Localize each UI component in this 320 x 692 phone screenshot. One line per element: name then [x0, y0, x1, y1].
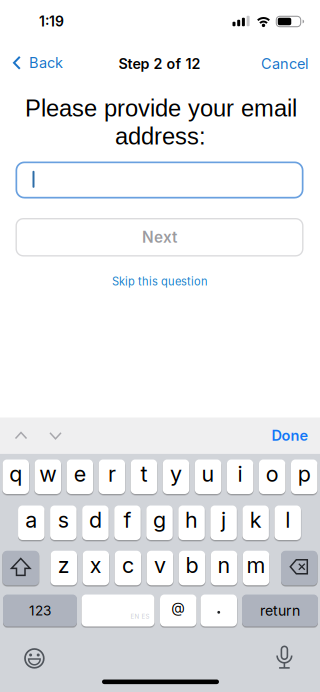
button[interactable]: y — [163, 459, 189, 494]
staticText: return — [260, 602, 300, 619]
button[interactable]: m — [243, 551, 269, 585]
staticText: l — [285, 507, 290, 533]
staticText: j — [221, 507, 226, 533]
staticText: EN ES — [130, 613, 149, 620]
button[interactable]: Cancel — [249, 44, 320, 84]
staticText: v — [154, 552, 166, 578]
staticText: z — [58, 552, 70, 578]
button[interactable]: s — [50, 505, 77, 540]
button[interactable]: @ — [160, 594, 196, 626]
button[interactable]: g — [146, 505, 173, 540]
staticText: 123 — [29, 602, 51, 619]
staticText: q — [9, 461, 22, 487]
staticText: b — [185, 552, 198, 578]
button[interactable]: z — [50, 551, 77, 585]
staticText: x — [90, 552, 102, 578]
button[interactable]: return — [242, 594, 318, 626]
button[interactable]: Back — [7, 48, 71, 78]
staticText: Step 2 of 12 — [118, 55, 200, 72]
button[interactable]: Dictate — [262, 636, 306, 680]
staticText: u — [201, 461, 214, 487]
button[interactable]: w — [34, 459, 61, 494]
staticText: k — [250, 507, 262, 533]
button[interactable]: b — [179, 551, 205, 585]
button[interactable]: v — [147, 551, 173, 585]
button[interactable]: e — [67, 459, 93, 494]
staticText: Next — [142, 228, 177, 247]
staticText: y — [170, 461, 182, 487]
button[interactable]: u — [195, 459, 221, 494]
staticText: c — [122, 552, 134, 578]
button[interactable]: p — [291, 459, 317, 494]
button[interactable]: Previous field — [6, 422, 36, 448]
button[interactable]: t — [131, 459, 157, 494]
staticText: d — [89, 507, 102, 533]
staticText: g — [153, 507, 166, 533]
staticText: address: — [115, 123, 206, 149]
staticText: Please provide your email — [25, 95, 297, 121]
staticText: n — [218, 552, 231, 578]
button[interactable]: Emoji — [12, 636, 56, 680]
button[interactable]: Email address — [15, 161, 303, 198]
button[interactable]: Skip this question — [85, 267, 235, 295]
staticText: Back — [29, 54, 63, 72]
staticText: m — [247, 552, 266, 578]
button[interactable]: j — [210, 505, 237, 540]
button[interactable]: 123 — [3, 594, 77, 626]
staticText: Done — [271, 427, 308, 444]
button[interactable]: Next — [15, 218, 303, 256]
button[interactable]: a — [18, 505, 45, 540]
button[interactable]: Shift — [2, 551, 39, 585]
staticText: w — [39, 461, 56, 487]
staticText: h — [185, 507, 198, 533]
button[interactable]: h — [178, 505, 205, 540]
staticText: i — [238, 461, 243, 487]
button[interactable]: o — [259, 459, 285, 494]
button[interactable]: n — [211, 551, 237, 585]
button[interactable]: l — [274, 505, 301, 540]
staticText: f — [123, 507, 131, 533]
button[interactable]: Period — [200, 594, 237, 626]
staticText: s — [58, 507, 69, 533]
button[interactable]: c — [115, 551, 141, 585]
button[interactable]: k — [242, 505, 269, 540]
button[interactable]: Space — [81, 594, 154, 626]
staticText: r — [108, 461, 116, 487]
button[interactable]: Delete — [281, 551, 317, 585]
staticText: o — [266, 461, 279, 487]
staticText: @ — [171, 599, 185, 616]
button[interactable]: f — [114, 505, 141, 540]
staticText: a — [25, 507, 37, 533]
button[interactable]: q — [2, 459, 29, 494]
staticText: p — [298, 461, 311, 487]
staticText: 1:19 — [39, 13, 64, 30]
button[interactable]: i — [227, 459, 253, 494]
button[interactable]: r — [99, 459, 125, 494]
button[interactable]: x — [83, 551, 109, 585]
staticText: Skip this question — [112, 275, 208, 288]
staticText: Cancel — [261, 55, 309, 73]
button[interactable]: d — [82, 505, 109, 540]
staticText: t — [140, 461, 147, 487]
staticText: e — [74, 461, 86, 487]
button[interactable]: Next field — [40, 422, 70, 448]
button[interactable]: Done — [260, 417, 320, 453]
